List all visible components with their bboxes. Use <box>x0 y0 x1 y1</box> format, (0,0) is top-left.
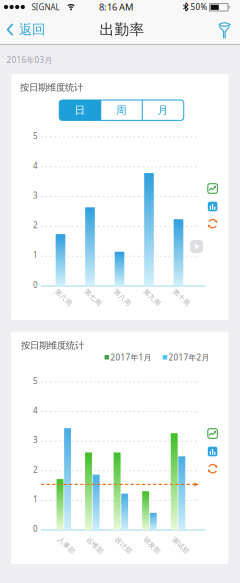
staticText: 返回 <box>19 21 45 38</box>
staticText: 2017年1月 <box>110 352 151 363</box>
staticText: 5 <box>33 375 38 386</box>
staticText: 1 <box>33 250 38 260</box>
staticText: 0 <box>33 279 38 290</box>
button[interactable]: 月 <box>142 100 184 120</box>
staticText: 0 <box>33 523 38 534</box>
staticText: 测试部 <box>170 541 191 550</box>
staticText: 8:16 AM <box>99 1 133 13</box>
button[interactable] <box>207 463 219 475</box>
staticText: 第九周 <box>141 293 162 302</box>
button[interactable]: 周 <box>101 100 142 120</box>
staticText: 设计部 <box>113 541 134 550</box>
staticText: 第六周 <box>53 293 74 302</box>
staticText: SIGNAL <box>31 2 59 12</box>
staticText: 5 <box>33 130 38 141</box>
button[interactable] <box>207 218 219 230</box>
button[interactable] <box>213 14 239 44</box>
button[interactable] <box>207 182 219 194</box>
staticText: 第十周 <box>171 293 192 302</box>
staticText: 周 <box>116 104 127 117</box>
staticText: 运维部 <box>84 541 105 550</box>
button[interactable] <box>207 200 219 212</box>
button[interactable]: 日 <box>59 100 101 120</box>
staticText: 4 <box>33 405 38 416</box>
staticText: 第八周 <box>112 293 133 302</box>
button[interactable] <box>207 427 219 439</box>
staticText: 1 <box>33 494 38 504</box>
staticText: 日 <box>74 104 85 117</box>
staticText: 第七周 <box>82 293 103 302</box>
staticText: 月 <box>157 104 168 117</box>
staticText: 2 <box>33 220 38 230</box>
staticText: 人事部 <box>56 541 77 550</box>
staticText: 出勤率 <box>99 20 144 38</box>
button[interactable]: 返回 <box>0 14 52 44</box>
staticText: 按日期维度统计 <box>21 340 84 351</box>
staticText: 2016年03月 <box>6 55 52 65</box>
staticText: 2017年2月 <box>168 352 209 363</box>
button[interactable] <box>207 445 219 457</box>
staticText: 研发部 <box>142 541 163 550</box>
staticText: 50% <box>190 2 207 12</box>
staticText: 2 <box>33 464 38 475</box>
button[interactable] <box>190 240 203 253</box>
staticText: 3 <box>33 435 38 445</box>
staticText: 按日期维度统计 <box>20 82 83 93</box>
staticText: 3 <box>33 190 38 201</box>
staticText: 4 <box>33 160 38 171</box>
